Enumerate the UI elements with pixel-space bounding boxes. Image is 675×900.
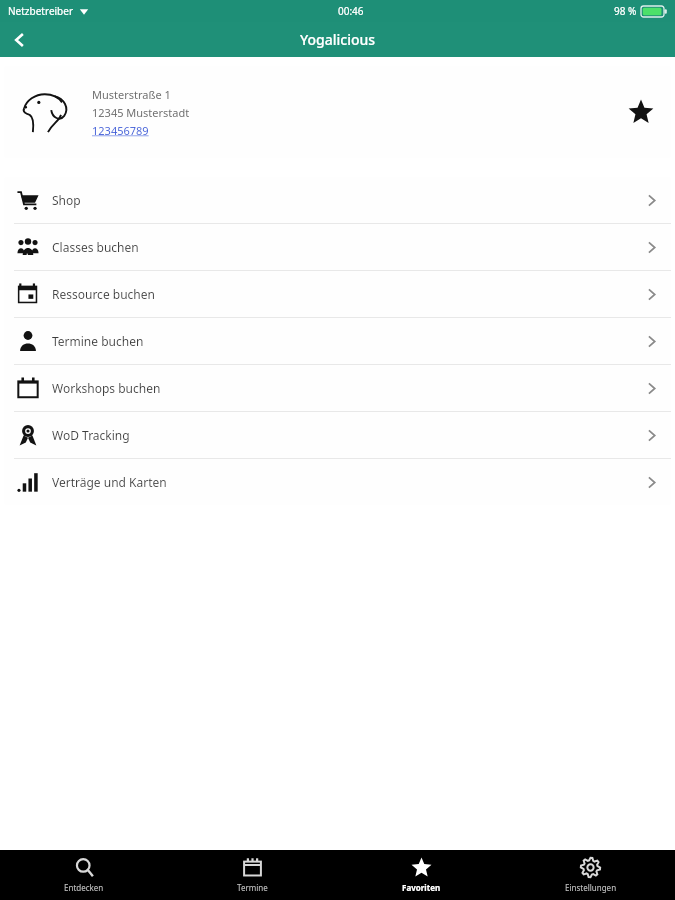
button[interactable]: Favorite bbox=[611, 66, 671, 158]
staticText: Workshops buchen bbox=[52, 380, 161, 396]
staticText: 123456789 bbox=[92, 123, 149, 138]
staticText: WoD Tracking bbox=[52, 427, 130, 443]
staticText: Entdecken bbox=[64, 882, 104, 893]
button[interactable]: 123456789 bbox=[92, 123, 149, 138]
staticText: Termine buchen bbox=[52, 333, 144, 349]
button[interactable]: Termine buchen bbox=[4, 318, 671, 364]
staticText: 00:46 bbox=[338, 4, 364, 18]
staticText: Musterstraße 1 bbox=[92, 87, 171, 102]
button[interactable]: Termine bbox=[168, 850, 337, 900]
staticText: Netzbetreiber bbox=[8, 4, 74, 18]
button[interactable]: Entdecken bbox=[0, 850, 168, 900]
staticText: Verträge und Karten bbox=[52, 474, 167, 490]
staticText: Einstellungen bbox=[565, 882, 617, 893]
staticText: Shop bbox=[52, 192, 81, 208]
staticText: 12345 Musterstadt bbox=[92, 105, 190, 120]
staticText: Yogalicious bbox=[300, 30, 376, 49]
staticText: Termine bbox=[237, 882, 268, 893]
button[interactable]: Workshops buchen bbox=[4, 365, 671, 411]
staticText: Classes buchen bbox=[52, 239, 139, 255]
button[interactable]: Favoriten bbox=[337, 850, 506, 900]
staticText: Ressource buchen bbox=[52, 286, 155, 302]
button[interactable]: Classes buchen bbox=[4, 224, 671, 270]
button[interactable]: Einstellungen bbox=[506, 850, 675, 900]
button[interactable]: WoD Tracking bbox=[4, 412, 671, 458]
button[interactable]: Back bbox=[0, 22, 40, 57]
button[interactable]: Ressource buchen bbox=[4, 271, 671, 317]
button[interactable]: Verträge und Karten bbox=[4, 459, 671, 505]
button[interactable]: Musterstraße 1 bbox=[4, 66, 671, 158]
staticText: 98 % bbox=[614, 4, 637, 18]
staticText: Favoriten bbox=[402, 882, 441, 893]
button[interactable]: Shop bbox=[4, 177, 671, 223]
